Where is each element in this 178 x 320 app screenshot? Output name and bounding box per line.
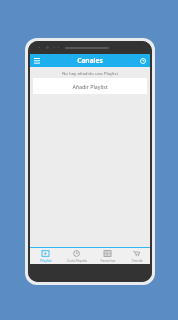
staticText: No hay añadido una Playlist [62, 70, 118, 76]
button[interactable]: Añadir Playlist [33, 78, 147, 94]
button[interactable]: Tienda [123, 248, 150, 264]
button[interactable]: History [138, 56, 148, 66]
staticText: Guía Rápida [67, 258, 87, 263]
staticText: Favoritos [100, 258, 116, 263]
staticText: Añadir Playlist [72, 83, 108, 90]
staticText: Canales [77, 56, 103, 65]
button[interactable]: Playlist [30, 248, 61, 264]
staticText: Tienda [131, 258, 143, 263]
button[interactable]: Menu [32, 56, 42, 66]
button[interactable]: Favoritos [92, 248, 123, 264]
staticText: Playlist [40, 258, 52, 263]
button[interactable]: Guía Rápida [61, 248, 92, 264]
